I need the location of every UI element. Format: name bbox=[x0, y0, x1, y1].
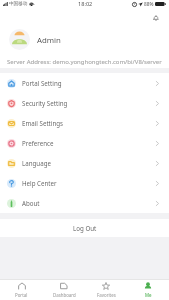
button[interactable]: Help Center bbox=[0, 173, 169, 193]
button[interactable]: Preference bbox=[0, 133, 169, 153]
button[interactable]: Favorites bbox=[85, 280, 127, 300]
button[interactable]: Email Settings bbox=[0, 113, 169, 133]
staticText: Admin bbox=[37, 35, 61, 46]
staticText: Favorites bbox=[97, 292, 116, 298]
staticText: Log Out bbox=[73, 224, 97, 232]
staticText: Server Address: demo.yonghongtech.com/bi… bbox=[7, 58, 162, 66]
staticText: 18:02 bbox=[78, 0, 93, 8]
button[interactable]: Notifications bbox=[149, 11, 163, 25]
staticText: Portal Setting bbox=[22, 79, 62, 87]
button[interactable]: Dashboard bbox=[43, 280, 85, 300]
staticText: 中国移动 bbox=[9, 1, 28, 7]
staticText: Portal bbox=[15, 292, 28, 298]
staticText: Language bbox=[22, 159, 51, 167]
staticText: Email Settings bbox=[22, 119, 64, 127]
button[interactable]: Portal bbox=[0, 280, 43, 300]
button[interactable]: About bbox=[0, 193, 169, 213]
button[interactable]: Log Out bbox=[0, 219, 169, 237]
staticText: Security Setting bbox=[22, 99, 68, 107]
staticText: About bbox=[22, 199, 40, 207]
staticText: Me bbox=[145, 292, 152, 298]
button[interactable]: Language bbox=[0, 153, 169, 173]
staticText: Help Center bbox=[22, 179, 57, 187]
staticText: Preference bbox=[22, 139, 54, 147]
button[interactable]: Portal Setting bbox=[0, 73, 169, 93]
staticText: Dashboard bbox=[53, 292, 76, 298]
staticText: 88% bbox=[144, 1, 154, 8]
button[interactable]: Me bbox=[127, 280, 169, 300]
button[interactable]: Security Setting bbox=[0, 93, 169, 113]
